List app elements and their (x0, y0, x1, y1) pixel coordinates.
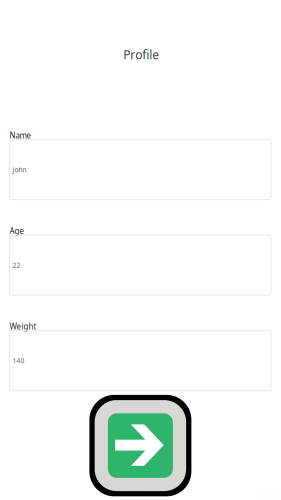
staticText: Profile (123, 47, 159, 62)
button[interactable]: Continue (89, 395, 191, 496)
button[interactable]: Age (9, 226, 271, 295)
staticText: 140 (12, 356, 24, 365)
staticText: Age (9, 225, 24, 236)
button[interactable]: Weight (9, 322, 271, 391)
staticText: Weight (9, 321, 36, 332)
staticText: John (12, 165, 26, 174)
button[interactable]: Name (9, 131, 271, 200)
staticText: Name (9, 130, 31, 141)
staticText: 22 (12, 261, 20, 270)
